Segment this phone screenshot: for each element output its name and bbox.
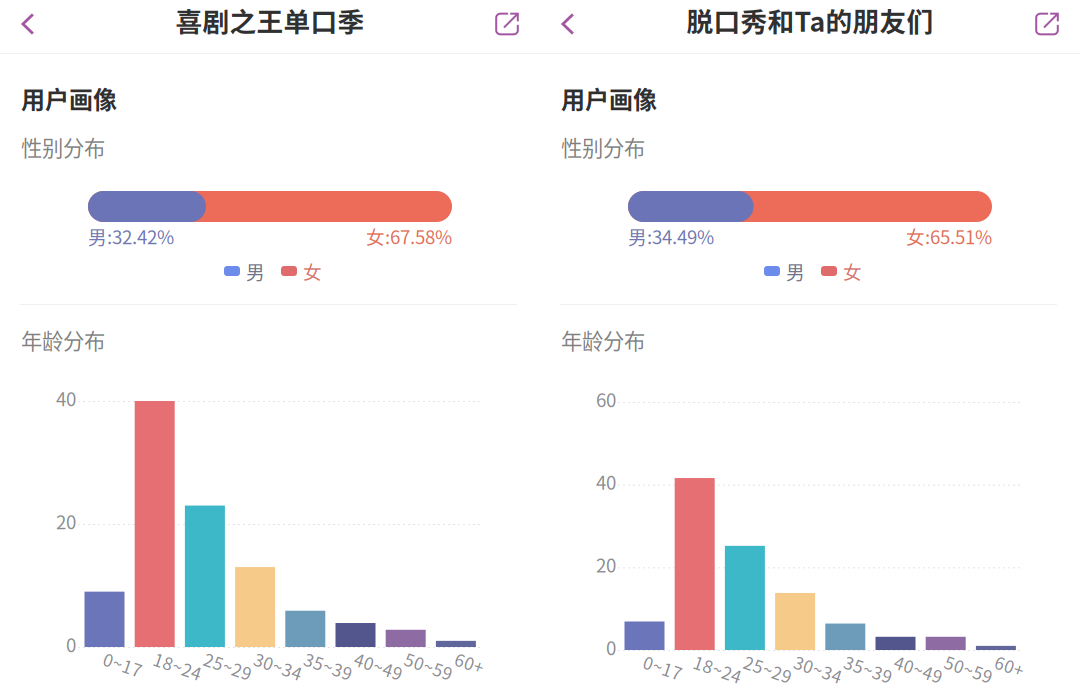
staticText: 35~39	[843, 657, 893, 683]
staticText: 50~59	[944, 657, 994, 683]
button[interactable]: Share	[1025, 0, 1069, 48]
staticText: 0~17	[102, 654, 142, 680]
staticText: 女:65.51%	[906, 222, 992, 249]
staticText: 20	[596, 551, 616, 578]
staticText: 性别分布	[561, 132, 645, 162]
staticText: 男	[246, 257, 265, 284]
staticText: 用户画像	[21, 81, 117, 115]
staticText: 男	[786, 257, 805, 284]
staticText: 40	[596, 468, 616, 495]
staticText: 30~34	[793, 657, 843, 683]
staticText: 18~24	[153, 654, 203, 680]
staticText: 0	[606, 633, 616, 660]
staticText: 25~29	[743, 657, 793, 683]
staticText: 18~24	[693, 657, 743, 683]
staticText: 用户画像	[561, 81, 657, 115]
staticText: 50~59	[404, 654, 454, 680]
staticText: 40~49	[353, 654, 403, 680]
staticText: 女	[843, 257, 862, 284]
staticText: 35~39	[303, 654, 353, 680]
staticText: 性别分布	[21, 132, 105, 162]
button[interactable]: Back	[546, 0, 590, 48]
staticText: 女	[303, 257, 322, 284]
staticText: 60+	[454, 654, 484, 680]
staticText: 脱口秀和Ta的朋友们	[686, 1, 933, 39]
staticText: 40~49	[893, 657, 943, 683]
button[interactable]: Share	[485, 0, 529, 48]
staticText: 30~34	[253, 654, 303, 680]
staticText: 0~17	[642, 657, 682, 683]
staticText: 40	[56, 384, 76, 411]
staticText: 男:32.42%	[88, 222, 174, 249]
staticText: 年龄分布	[561, 325, 645, 355]
button[interactable]: Back	[6, 0, 50, 48]
staticText: 女:67.58%	[366, 222, 452, 249]
staticText: 20	[56, 507, 76, 534]
staticText: 男:34.49%	[628, 222, 714, 249]
staticText: 0	[66, 630, 76, 657]
staticText: 喜剧之王单口季	[175, 1, 364, 39]
staticText: 年龄分布	[21, 325, 105, 355]
staticText: 60+	[994, 657, 1024, 683]
staticText: 25~29	[203, 654, 253, 680]
staticText: 60	[596, 385, 616, 412]
